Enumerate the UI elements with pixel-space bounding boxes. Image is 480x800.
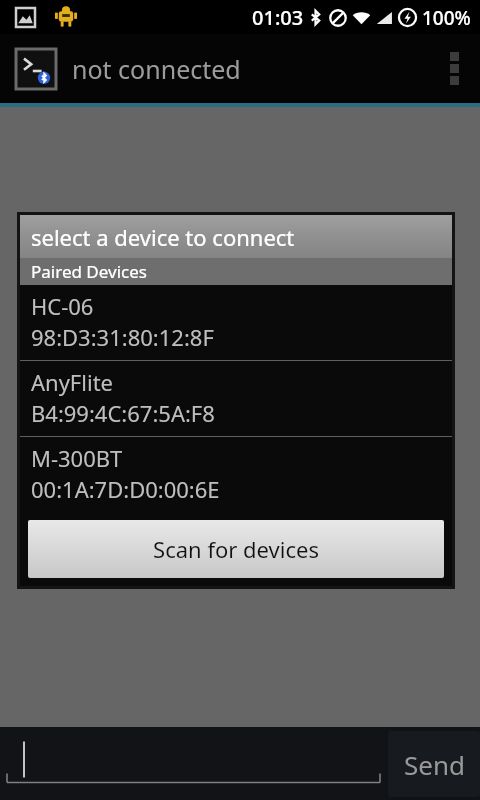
button[interactable]: AnyFlite xyxy=(20,360,452,436)
staticText: B4:99:4C:67:5A:F8 xyxy=(31,398,215,428)
button[interactable]: Scan for devices xyxy=(28,520,444,578)
button[interactable]: Message input xyxy=(7,727,380,800)
staticText: 100% xyxy=(422,5,471,31)
staticText: 00:1A:7D:D0:00:6E xyxy=(31,474,220,504)
staticText: Send xyxy=(404,747,465,782)
staticText: not connected xyxy=(72,52,241,86)
button[interactable]: HC-06 xyxy=(20,285,452,360)
staticText: Paired Devices xyxy=(31,260,147,283)
button[interactable]: More options xyxy=(428,34,480,103)
staticText: 98:D3:31:80:12:8F xyxy=(31,322,214,352)
staticText: 01:03 xyxy=(252,4,304,31)
button[interactable]: Send xyxy=(388,731,480,797)
staticText: select a device to connect xyxy=(31,222,295,252)
staticText: AnyFlite xyxy=(31,367,113,397)
button[interactable]: M-300BT xyxy=(20,436,452,512)
staticText: HC-06 xyxy=(31,291,94,321)
staticText: Scan for devices xyxy=(153,534,319,564)
staticText: M-300BT xyxy=(31,443,123,473)
